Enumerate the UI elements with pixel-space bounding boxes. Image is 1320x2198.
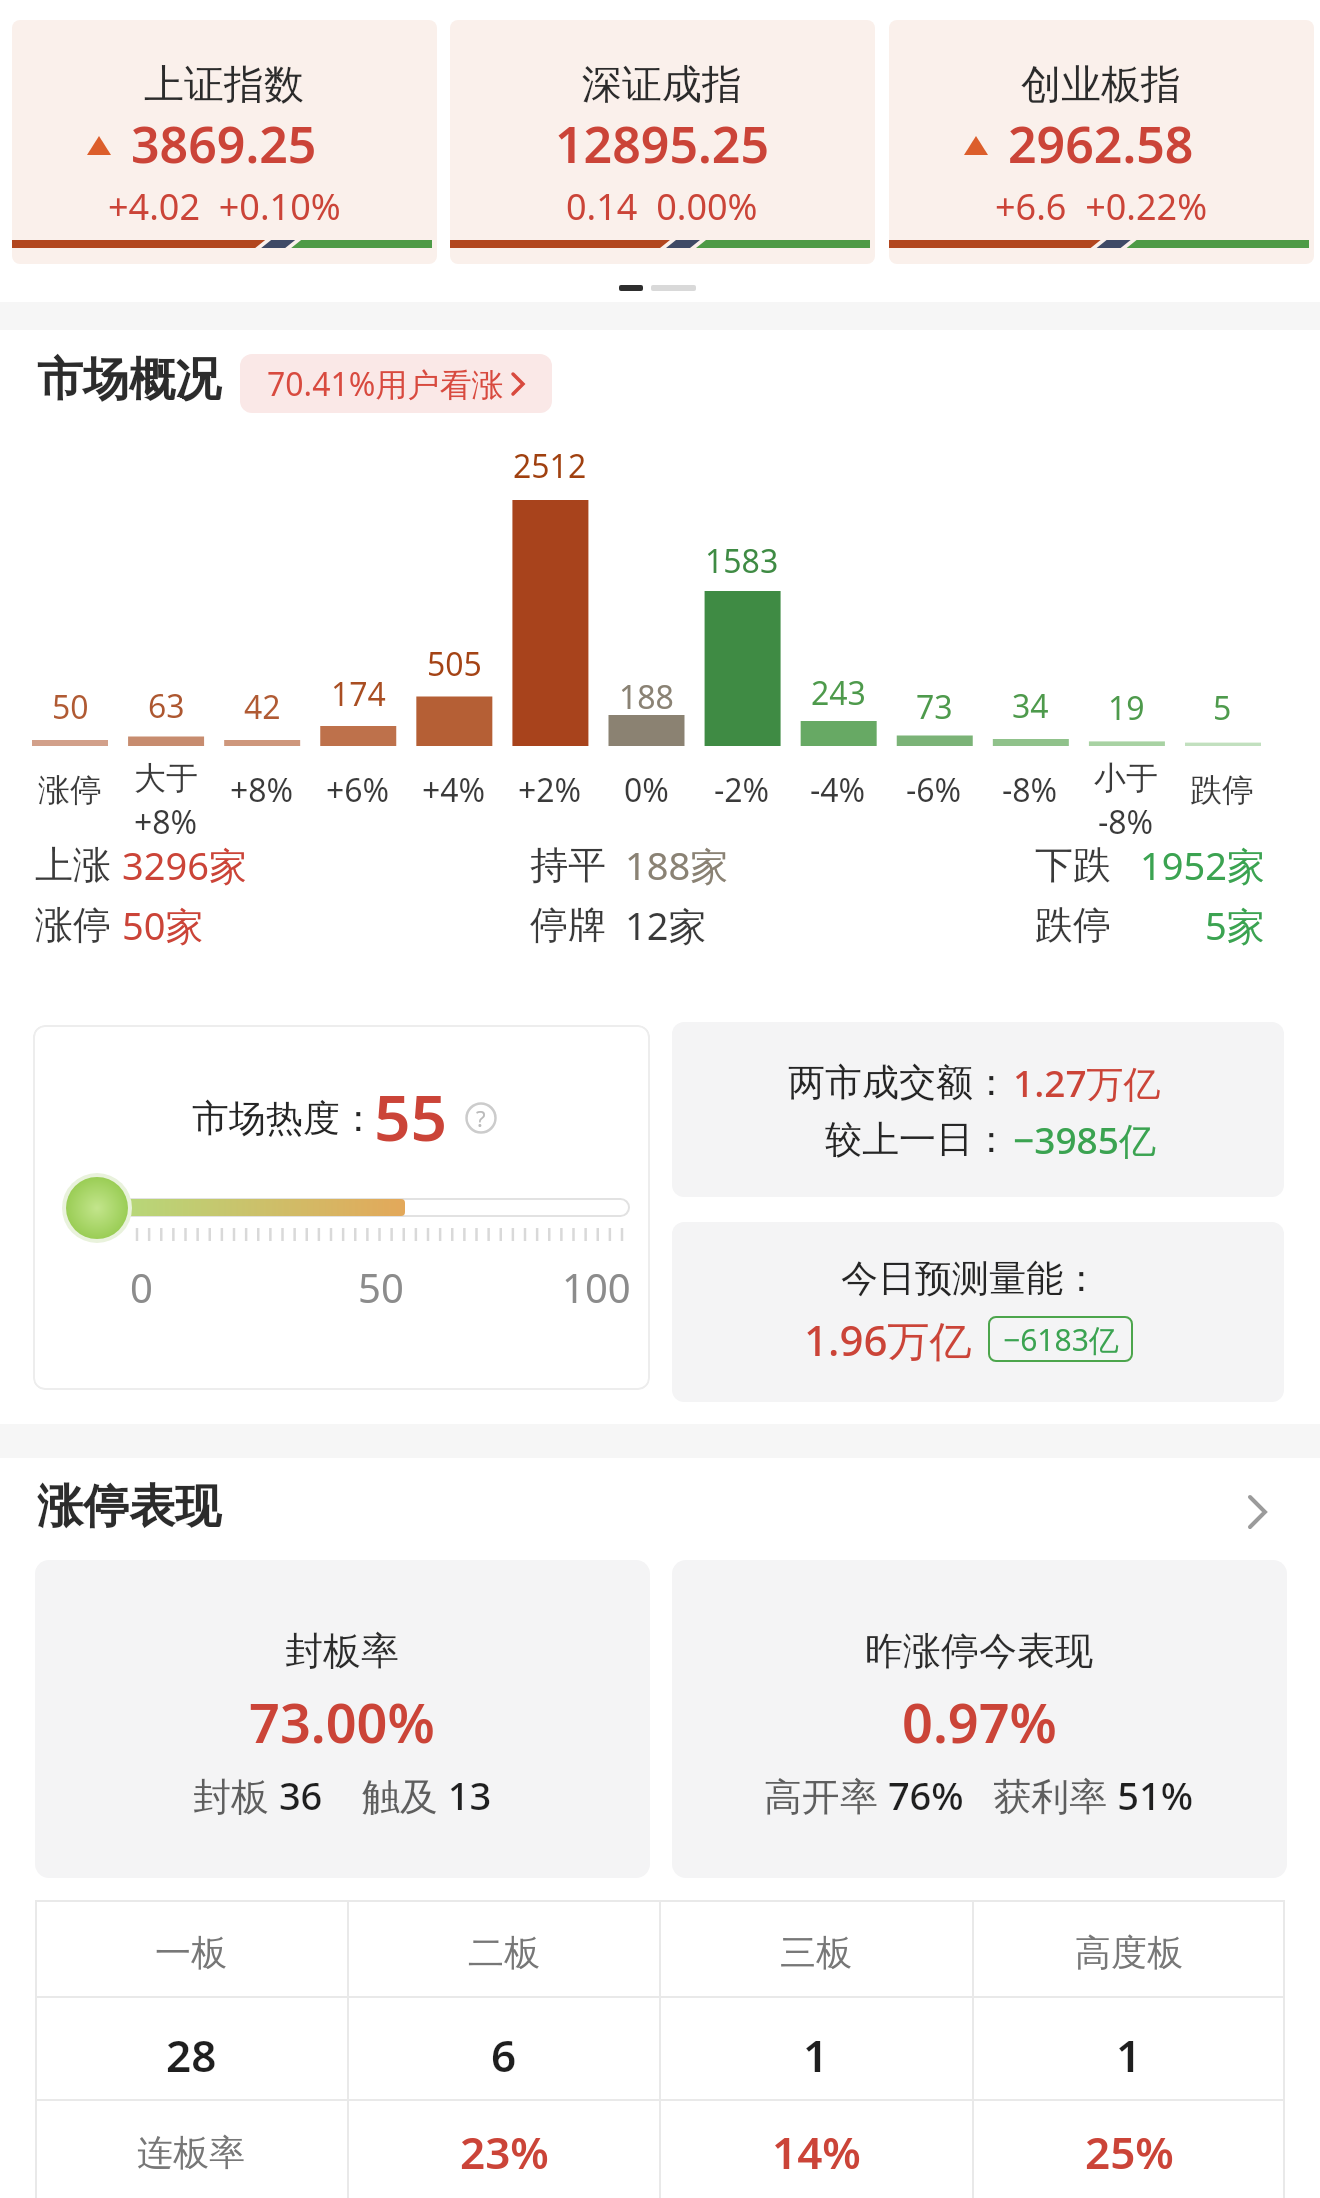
staticText: 昨涨停今表现	[865, 1627, 1093, 1675]
staticText: 跌停	[1190, 770, 1254, 810]
staticText: -2%	[714, 768, 770, 812]
staticText: 1583	[705, 539, 779, 583]
staticText: 持平	[530, 841, 606, 889]
staticText: 2962.58	[1008, 110, 1194, 178]
button[interactable]	[672, 1222, 1284, 1402]
staticText: 涨停	[38, 770, 102, 810]
staticText: 今日预测量能：	[841, 1255, 1100, 1302]
staticText: +6.6 +0.22%	[995, 182, 1208, 231]
staticText: 2512	[513, 444, 587, 488]
staticText: +2%	[518, 768, 582, 812]
staticText: 创业板指	[1021, 59, 1181, 109]
staticText: 19	[1108, 686, 1145, 730]
staticText: +4.02 +0.10%	[108, 182, 341, 231]
staticText: 下跌	[1035, 841, 1111, 889]
staticText: 涨停表现	[37, 1478, 221, 1536]
staticText: 上证指数	[144, 59, 304, 109]
staticText: 1	[803, 2025, 829, 2085]
staticText: 188	[619, 675, 674, 719]
button[interactable]	[33, 1025, 650, 1390]
staticText: 二板	[468, 1930, 540, 1975]
staticText: 12895.25	[555, 110, 769, 178]
staticText: 50家	[122, 899, 204, 951]
staticText: 高度板	[1075, 1930, 1183, 1975]
button[interactable]	[0, 1478, 1320, 1548]
staticText: 1952家	[1140, 839, 1265, 891]
button[interactable]: 70.41%用户看涨	[240, 354, 552, 413]
staticText: 1.96万亿	[804, 1311, 972, 1368]
staticText: 6	[491, 2025, 517, 2085]
staticText: -6%	[906, 768, 962, 812]
staticText: 50	[358, 1260, 404, 1314]
staticText: 70.41%用户看涨	[267, 362, 504, 406]
staticText: 市场热度：	[192, 1095, 377, 1142]
staticText: 0.97%	[902, 1685, 1057, 1759]
staticText: 深证成指	[582, 59, 742, 109]
staticText: 1	[1116, 2025, 1142, 2085]
button[interactable]	[889, 20, 1314, 264]
staticText: 505	[427, 642, 482, 686]
staticText: 28	[166, 2025, 217, 2085]
staticText: 上涨	[35, 841, 111, 889]
staticText: 5家	[1205, 899, 1265, 951]
staticText: 243	[811, 671, 866, 715]
staticText: -8%	[1098, 800, 1154, 844]
staticText: +8%	[230, 768, 294, 812]
staticText: 100	[562, 1260, 631, 1314]
staticText: 停牌	[530, 901, 606, 949]
button[interactable]	[12, 20, 437, 264]
staticText: -4%	[810, 768, 866, 812]
staticText: 34	[1012, 684, 1049, 728]
staticText: 3296家	[122, 839, 247, 891]
staticText: 23%	[460, 2122, 549, 2182]
staticText: 高开率 76% 获利率 51%	[764, 1769, 1194, 1821]
staticText: 12家	[625, 899, 707, 951]
staticText: 174	[331, 672, 386, 716]
staticText: ?	[476, 1103, 486, 1133]
staticText: 一板	[155, 1930, 227, 1975]
staticText: +4%	[422, 768, 486, 812]
staticText: 25%	[1085, 2122, 1174, 2182]
staticText: 两市成交额：	[788, 1059, 1010, 1106]
staticText: 0	[130, 1260, 153, 1314]
staticText: −6183亿	[1003, 1319, 1119, 1360]
staticText: 市场概况	[37, 351, 221, 409]
staticText: 73	[916, 685, 953, 729]
staticText: 5	[1213, 686, 1232, 730]
staticText: 涨停	[35, 901, 111, 949]
button[interactable]	[35, 1560, 650, 1878]
staticText: 三板	[780, 1930, 852, 1975]
staticText: 3869.25	[131, 110, 317, 178]
staticText: 较上一日：	[825, 1116, 1010, 1163]
staticText: 0.14 0.00%	[566, 182, 758, 231]
staticText: 63	[148, 684, 185, 728]
button[interactable]	[672, 1022, 1284, 1197]
staticText: 73.00%	[249, 1685, 435, 1759]
staticText: -8%	[1002, 768, 1058, 812]
staticText: 封板 36 触及 13	[193, 1769, 492, 1821]
button[interactable]	[450, 20, 875, 264]
staticText: 跌停	[1035, 901, 1111, 949]
staticText: +6%	[326, 768, 390, 812]
staticText: 0%	[624, 768, 669, 812]
staticText: 50	[52, 685, 89, 729]
staticText: 1.27万亿	[1013, 1057, 1161, 1108]
staticText: 188家	[625, 839, 729, 891]
staticText: 大于	[134, 758, 198, 798]
staticText: 封板率	[285, 1627, 399, 1675]
staticText: −3985亿	[1013, 1114, 1156, 1165]
staticText: 42	[244, 685, 281, 729]
staticText: 55	[374, 1073, 448, 1160]
staticText: +8%	[134, 800, 198, 844]
staticText: 连板率	[137, 2130, 245, 2175]
staticText: 14%	[772, 2122, 861, 2182]
staticText: 小于	[1094, 758, 1158, 798]
button[interactable]	[672, 1560, 1287, 1878]
